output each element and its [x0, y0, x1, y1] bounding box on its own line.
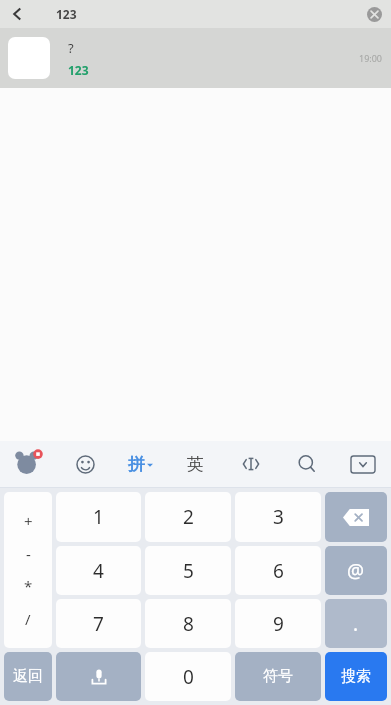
button[interactable]: 3 [235, 492, 321, 542]
staticText: 9 [273, 611, 284, 637]
staticText: . [353, 611, 359, 637]
staticText: * [24, 576, 33, 596]
button[interactable]: Baidu input [0, 441, 58, 487]
staticText: 英 [187, 454, 204, 475]
button[interactable]: 搜索 [325, 652, 387, 701]
button[interactable]: 英 [168, 441, 223, 487]
button[interactable]: 2 [145, 492, 231, 542]
button[interactable]: 返回 [4, 652, 52, 701]
button[interactable]: ? [0, 28, 391, 88]
button[interactable]: Voice input [56, 652, 141, 701]
staticText: @ [347, 558, 365, 584]
button[interactable]: 6 [235, 546, 321, 595]
button[interactable]: 8 [145, 599, 231, 648]
button[interactable]: 7 [56, 599, 141, 648]
staticText: 19:00 [359, 52, 383, 64]
staticText: 3 [273, 504, 284, 530]
button[interactable]: Period [325, 599, 387, 648]
button[interactable]: 拼 [113, 441, 168, 487]
button[interactable]: 0 [145, 652, 231, 701]
staticText: 0 [183, 664, 194, 690]
button[interactable]: At sign [325, 546, 387, 595]
button[interactable]: 5 [145, 546, 231, 595]
staticText: / [25, 609, 31, 629]
button[interactable]: Hide keyboard [335, 441, 391, 487]
staticText: ? [68, 39, 74, 57]
button[interactable]: 符号 [235, 652, 321, 701]
staticText: 拼 [128, 454, 145, 475]
staticText: 7 [93, 611, 104, 637]
staticText: 2 [183, 504, 194, 530]
button[interactable]: 9 [235, 599, 321, 648]
staticText: 搜索 [341, 667, 371, 686]
button[interactable]: + - * / [4, 492, 52, 648]
button[interactable]: Back [0, 0, 34, 28]
staticText: 返回 [13, 667, 43, 686]
staticText: - [26, 544, 31, 564]
staticText: 符号 [263, 667, 293, 686]
button[interactable]: 4 [56, 546, 141, 595]
staticText: + [24, 511, 33, 531]
button[interactable]: Clear [357, 0, 391, 28]
staticText: 6 [273, 558, 284, 584]
button[interactable]: Cursor [223, 441, 279, 487]
staticText: 4 [93, 558, 104, 584]
button[interactable]: Search [279, 441, 335, 487]
staticText: 123 [68, 62, 89, 78]
staticText: 123 [56, 6, 77, 22]
button[interactable]: Backspace [325, 492, 387, 542]
button[interactable]: 1 [56, 492, 141, 542]
staticText: 1 [93, 504, 104, 530]
staticText: 5 [183, 558, 194, 584]
staticText: 8 [183, 611, 194, 637]
button[interactable]: Emoji [58, 441, 113, 487]
